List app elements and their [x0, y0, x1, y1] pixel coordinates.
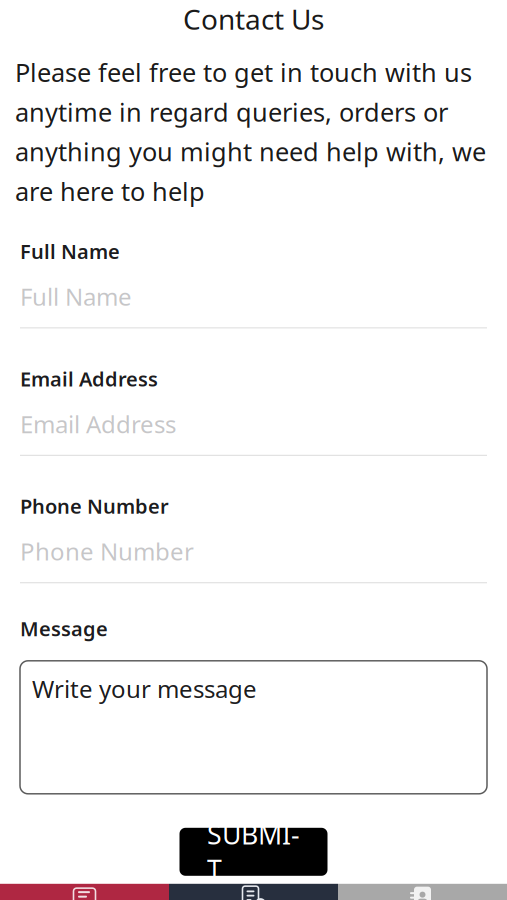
button[interactable]: SUBMIT — [179, 828, 327, 876]
button[interactable]: Phone Number — [0, 493, 507, 583]
staticText: Email Address — [20, 365, 158, 392]
button[interactable]: About — [169, 884, 338, 900]
button[interactable]: Full Name — [0, 238, 507, 328]
staticText: Full Name — [20, 280, 132, 312]
button[interactable]: Contact Us — [338, 884, 507, 900]
button[interactable]: Write your message — [20, 661, 487, 794]
staticText: Email Address — [20, 408, 176, 440]
staticText: Full Name — [20, 238, 120, 264]
staticText: Message — [20, 615, 108, 642]
button[interactable]: Home — [0, 884, 169, 900]
staticText: Phone Number — [20, 535, 194, 567]
staticText: Please feel free to get in touch with us… — [15, 55, 486, 208]
button[interactable]: Email Address — [0, 365, 507, 456]
staticText: SUBMIT — [207, 816, 300, 887]
staticText: Phone Number — [20, 493, 169, 519]
staticText: Write your message — [32, 673, 257, 705]
staticText: Contact Us — [183, 0, 324, 37]
